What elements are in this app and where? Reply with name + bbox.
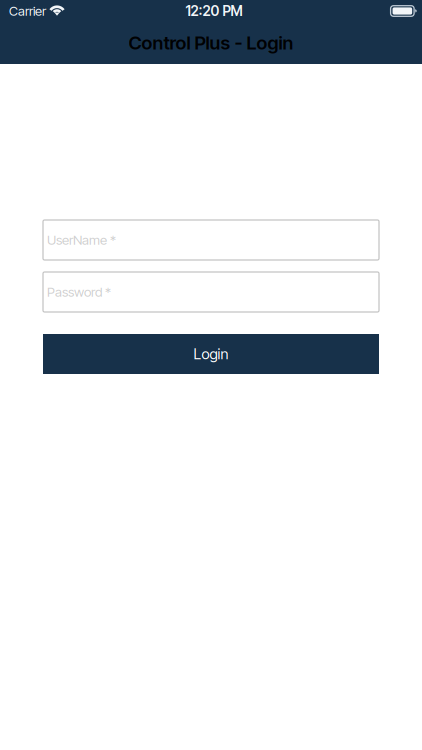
- staticText: Carrier: [9, 3, 46, 19]
- staticText: Login: [193, 345, 228, 363]
- staticText: UserName *: [47, 232, 116, 248]
- staticText: Password *: [47, 284, 111, 300]
- staticText: Control Plus - Login: [128, 31, 293, 54]
- button[interactable]: UserName: [43, 220, 379, 260]
- button[interactable]: Login: [43, 334, 379, 374]
- staticText: 12:20 PM: [185, 2, 242, 19]
- button[interactable]: Password: [43, 272, 379, 312]
